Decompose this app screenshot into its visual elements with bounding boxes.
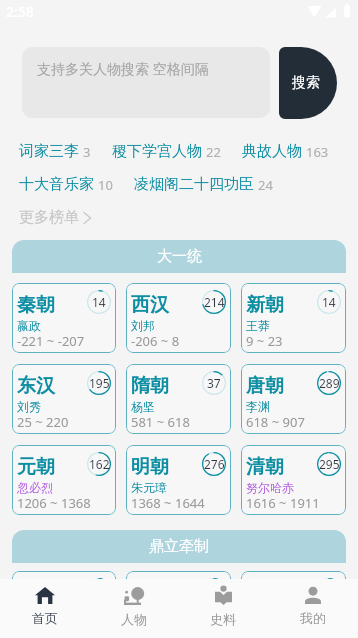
button[interactable]: Home: [0, 579, 89, 638]
staticText: 忽必烈: [17, 480, 53, 495]
staticText: 195: [89, 375, 110, 391]
staticText: 明朝: [131, 455, 169, 479]
staticText: 420 ~ 589: [246, 620, 305, 638]
button[interactable]: 明朝: [126, 445, 231, 515]
staticText: 2:58: [6, 2, 34, 21]
button[interactable]: 搜索: [279, 47, 337, 119]
staticText: 典故人物: [242, 142, 302, 161]
staticText: 24: [258, 176, 273, 194]
staticText: 元朝: [17, 455, 55, 479]
staticText: 凌烟阁二十四功臣: [134, 175, 254, 194]
staticText: 我的: [300, 610, 326, 626]
staticText: 朱元璋: [131, 480, 167, 495]
staticText: 词家三李: [19, 142, 79, 161]
staticText: 首页: [32, 610, 58, 626]
staticText: 14: [322, 294, 336, 310]
button[interactable]: 大一统: [12, 240, 346, 273]
staticText: 人物: [121, 611, 147, 627]
staticText: 隋朝: [131, 374, 169, 398]
staticText: 史料: [210, 611, 236, 627]
button[interactable]: 凌烟阁二十四功臣: [134, 175, 273, 194]
button[interactable]: 新朝: [241, 283, 346, 353]
other: Records: [215, 586, 232, 605]
staticText: 搜索: [292, 74, 320, 92]
staticText: 鼎立牵制: [149, 537, 209, 556]
staticText: 295: [319, 456, 340, 472]
button[interactable]: 东晋: [126, 571, 231, 638]
staticText: 25 ~ 220: [17, 413, 69, 431]
staticText: 14: [92, 294, 106, 310]
staticText: 10: [98, 176, 113, 194]
staticText: 9 ~ 23: [246, 332, 283, 350]
other: People: [124, 587, 144, 605]
button[interactable]: Profile: [268, 579, 358, 638]
staticText: 刘秀: [17, 399, 41, 414]
button[interactable]: 元朝: [12, 445, 116, 515]
staticText: 276: [204, 456, 225, 472]
staticText: -206 ~ 8: [131, 332, 180, 350]
staticText: 司马睿: [131, 606, 167, 621]
button[interactable]: People: [89, 579, 178, 638]
staticText: -221 ~ -207: [17, 332, 85, 350]
staticText: 李渊: [246, 399, 270, 414]
staticText: 1616 ~ 1911: [246, 494, 320, 512]
staticText: 289: [319, 375, 340, 391]
staticText: 三国: [17, 581, 55, 605]
staticText: 唐朝: [246, 374, 284, 398]
button[interactable]: 鼎立牵制: [12, 530, 346, 563]
staticText: 1206 ~ 1368: [17, 494, 91, 512]
button[interactable]: 南朝: [241, 571, 346, 638]
button[interactable]: Records: [178, 579, 268, 638]
button[interactable]: 东汉: [12, 364, 116, 434]
staticText: 嬴政: [17, 318, 41, 333]
button[interactable]: 秦朝: [12, 283, 116, 353]
staticText: 618 ~ 907: [246, 413, 305, 431]
staticText: 大一统: [157, 247, 202, 266]
staticText: 1368 ~ 1644: [131, 494, 205, 512]
button[interactable]: 十大音乐家: [19, 175, 113, 194]
staticText: 清朝: [246, 455, 284, 479]
staticText: 317 ~ 420: [131, 620, 190, 638]
button[interactable]: 隋朝: [126, 364, 231, 434]
staticText: 90: [207, 582, 221, 598]
button[interactable]: 三国: [12, 571, 116, 638]
staticText: 3: [83, 143, 91, 161]
staticText: 十大音乐家: [19, 175, 94, 194]
staticText: 东汉: [17, 374, 55, 398]
staticText: 163: [306, 143, 329, 161]
staticText: 秦朝: [17, 293, 55, 317]
staticText: 稷下学宫人物: [112, 142, 202, 161]
staticText: 37: [207, 375, 221, 391]
other: Profile: [305, 587, 321, 604]
button[interactable]: 唐朝: [241, 364, 346, 434]
button[interactable]: 稷下学宫人物: [112, 142, 221, 161]
button[interactable]: 清朝: [241, 445, 346, 515]
staticText: 220 ~ 280: [17, 620, 76, 638]
staticText: 杨坚: [131, 399, 155, 414]
staticText: 支持多关人物搜索 空格间隔: [37, 59, 209, 78]
staticText: 新朝: [246, 293, 284, 317]
staticText: 刘邦: [131, 318, 155, 333]
button[interactable]: 典故人物: [242, 142, 329, 161]
button[interactable]: 西汉: [126, 283, 231, 353]
staticText: 214: [204, 294, 225, 310]
other: Home: [35, 587, 55, 604]
staticText: 王莽: [246, 318, 270, 333]
staticText: 581 ~ 618: [131, 413, 190, 431]
staticText: 更多榜单: [19, 208, 79, 227]
staticText: 西汉: [131, 293, 169, 317]
staticText: 东晋: [131, 581, 169, 605]
staticText: 22: [206, 143, 221, 161]
button[interactable]: 支持多关人物搜索 空格间隔: [22, 47, 270, 118]
button[interactable]: 更多榜单: [19, 208, 92, 227]
staticText: 努尔哈赤: [246, 480, 294, 495]
staticText: 162: [89, 456, 110, 472]
button[interactable]: 词家三李: [19, 142, 91, 161]
staticText: 曹操: [17, 606, 41, 621]
